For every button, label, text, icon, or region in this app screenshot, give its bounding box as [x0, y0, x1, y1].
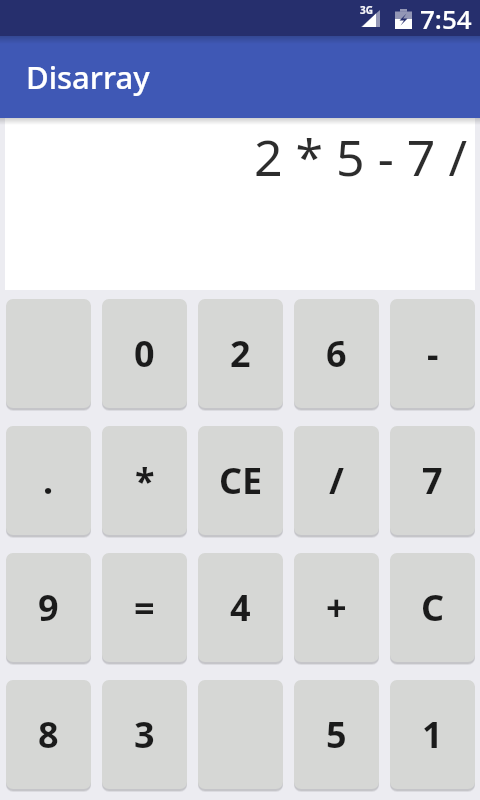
button[interactable]: 0 — [102, 299, 187, 408]
button[interactable]: 1 — [390, 680, 475, 789]
staticText: 0 — [134, 329, 155, 378]
button[interactable]: 8 — [6, 680, 91, 789]
staticText: - — [427, 329, 439, 378]
staticText: = — [134, 583, 155, 632]
button[interactable]: 3 — [102, 680, 187, 789]
button[interactable]: 5 — [294, 680, 379, 789]
staticText: CE — [219, 456, 263, 505]
button[interactable]: 6 — [294, 299, 379, 408]
button[interactable]: - — [390, 299, 475, 408]
button[interactable]: = — [102, 553, 187, 662]
staticText: * — [135, 456, 155, 505]
staticText: 8 — [38, 710, 59, 759]
button[interactable]: CE — [198, 426, 283, 535]
staticText: Disarray — [26, 56, 150, 98]
staticText: 7:54 — [420, 1, 472, 36]
staticText: 9 — [38, 583, 59, 632]
staticText: 7 — [422, 456, 443, 505]
staticText: . — [43, 456, 54, 505]
staticText: / — [329, 456, 344, 505]
button[interactable]: 2 * 5 - 7 / — [5, 118, 475, 290]
staticText: + — [326, 583, 347, 632]
staticText: C — [421, 583, 445, 632]
button[interactable]: . — [6, 426, 91, 535]
button[interactable]: + — [294, 553, 379, 662]
staticText: 3 — [134, 710, 155, 759]
staticText: 6 — [326, 329, 347, 378]
staticText: 3G — [360, 3, 373, 17]
button[interactable]: 4 — [198, 553, 283, 662]
button[interactable]: * — [102, 426, 187, 535]
staticText: 1 — [422, 710, 443, 759]
button[interactable]: 2 — [198, 299, 283, 408]
button[interactable]: C — [390, 553, 475, 662]
button[interactable]: 9 — [6, 553, 91, 662]
staticText: 2 — [230, 329, 251, 378]
button[interactable]: / — [294, 426, 379, 535]
staticText: 5 — [326, 710, 347, 759]
button[interactable]: 7 — [390, 426, 475, 535]
staticText: 2 * 5 - 7 / — [253, 123, 467, 191]
staticText: 4 — [230, 583, 251, 632]
